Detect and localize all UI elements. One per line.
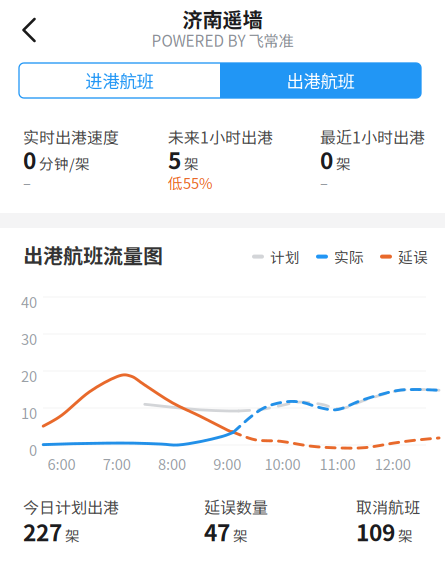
staticText: 今日计划出港 bbox=[23, 495, 119, 518]
staticText: 0 bbox=[320, 143, 333, 176]
staticText: 未来1小时出港 bbox=[168, 125, 273, 148]
staticText: 架 bbox=[398, 525, 413, 546]
button[interactable]: Back bbox=[6, 8, 52, 52]
staticText: 低55% bbox=[168, 172, 213, 193]
staticText: 10:00 bbox=[264, 453, 300, 474]
staticText: 11:00 bbox=[320, 453, 356, 474]
staticText: 进港航班 bbox=[85, 68, 153, 93]
staticText: – bbox=[23, 172, 31, 193]
staticText: 架 bbox=[184, 153, 199, 174]
staticText: 40 bbox=[21, 291, 37, 312]
staticText: POWERED BY 飞常准 bbox=[151, 29, 293, 51]
staticText: 济南遥墙 bbox=[182, 4, 262, 33]
staticText: 出港航班流量图 bbox=[23, 240, 163, 269]
staticText: 延误数量 bbox=[204, 495, 268, 518]
staticText: 延误 bbox=[398, 246, 428, 267]
staticText: 架 bbox=[336, 153, 351, 174]
staticText: 出港航班 bbox=[286, 68, 354, 93]
staticText: 0 bbox=[23, 143, 36, 176]
staticText: 20 bbox=[21, 365, 37, 386]
staticText: 47 bbox=[204, 515, 230, 548]
staticText: 0 bbox=[29, 439, 37, 460]
button[interactable]: 进港航班 bbox=[19, 63, 220, 98]
staticText: 6:00 bbox=[48, 453, 76, 474]
staticText: – bbox=[320, 172, 328, 193]
staticText: 10 bbox=[21, 402, 37, 423]
staticText: 架 bbox=[65, 525, 80, 546]
staticText: 109 bbox=[356, 515, 395, 548]
staticText: 最近1小时出港 bbox=[320, 125, 425, 148]
staticText: 5 bbox=[168, 143, 181, 176]
staticText: 实时出港速度 bbox=[23, 125, 119, 148]
staticText: 分钟/架 bbox=[39, 153, 90, 174]
staticText: 7:00 bbox=[103, 453, 131, 474]
staticText: 12:00 bbox=[375, 453, 411, 474]
button[interactable]: 出港航班 bbox=[220, 63, 421, 98]
staticText: 9:00 bbox=[213, 453, 241, 474]
staticText: 实际 bbox=[334, 246, 364, 267]
staticText: 架 bbox=[233, 525, 248, 546]
staticText: 取消航班 bbox=[356, 495, 420, 518]
staticText: 计划 bbox=[270, 246, 300, 267]
staticText: 227 bbox=[23, 515, 62, 548]
staticText: 8:00 bbox=[158, 453, 186, 474]
staticText: 30 bbox=[21, 328, 37, 349]
